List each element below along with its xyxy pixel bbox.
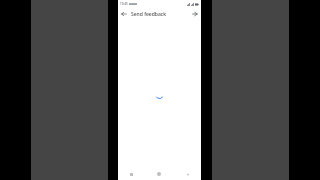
button[interactable]: Recent apps [118, 168, 145, 180]
button[interactable]: Send [190, 9, 200, 19]
button[interactable]: Back [173, 168, 201, 180]
staticText: 10:45 [120, 2, 128, 6]
button[interactable]: Home [145, 168, 173, 180]
staticText: Send feedback [131, 11, 166, 18]
button[interactable]: Back [119, 9, 129, 19]
